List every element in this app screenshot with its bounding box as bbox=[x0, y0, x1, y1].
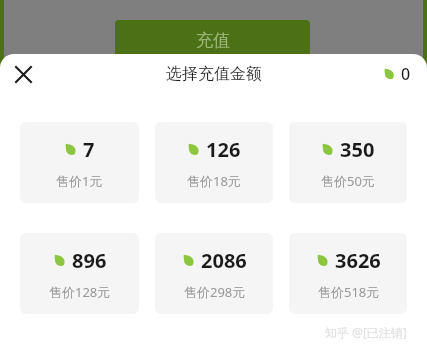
button[interactable]: 充值 bbox=[115, 20, 310, 60]
button[interactable]: 0 bbox=[383, 63, 411, 85]
staticText: 售价298元 bbox=[184, 283, 246, 301]
button[interactable]: 关闭 bbox=[9, 60, 37, 88]
button[interactable]: 2086 bbox=[155, 233, 273, 314]
button[interactable]: 3626 bbox=[289, 233, 407, 314]
staticText: 售价518元 bbox=[318, 283, 380, 301]
button[interactable]: 896 bbox=[20, 233, 139, 314]
button[interactable]: 350 bbox=[289, 122, 407, 203]
staticText: 7 bbox=[83, 136, 95, 163]
staticText: 2086 bbox=[201, 247, 247, 274]
staticText: 3626 bbox=[335, 247, 381, 274]
staticText: 896 bbox=[72, 247, 107, 274]
staticText: 售价18元 bbox=[187, 172, 241, 190]
staticText: 充值 bbox=[196, 30, 230, 51]
staticText: 126 bbox=[206, 136, 241, 163]
staticText: 选择充值金额 bbox=[166, 64, 262, 84]
button[interactable]: 7 bbox=[20, 122, 139, 203]
staticText: 售价128元 bbox=[49, 283, 111, 301]
staticText: 350 bbox=[340, 136, 375, 163]
staticText: 知乎 @[已注销] bbox=[325, 324, 407, 340]
button[interactable]: 126 bbox=[155, 122, 273, 203]
staticText: 0 bbox=[401, 63, 411, 85]
staticText: 售价1元 bbox=[56, 172, 103, 190]
staticText: 售价50元 bbox=[321, 172, 375, 190]
